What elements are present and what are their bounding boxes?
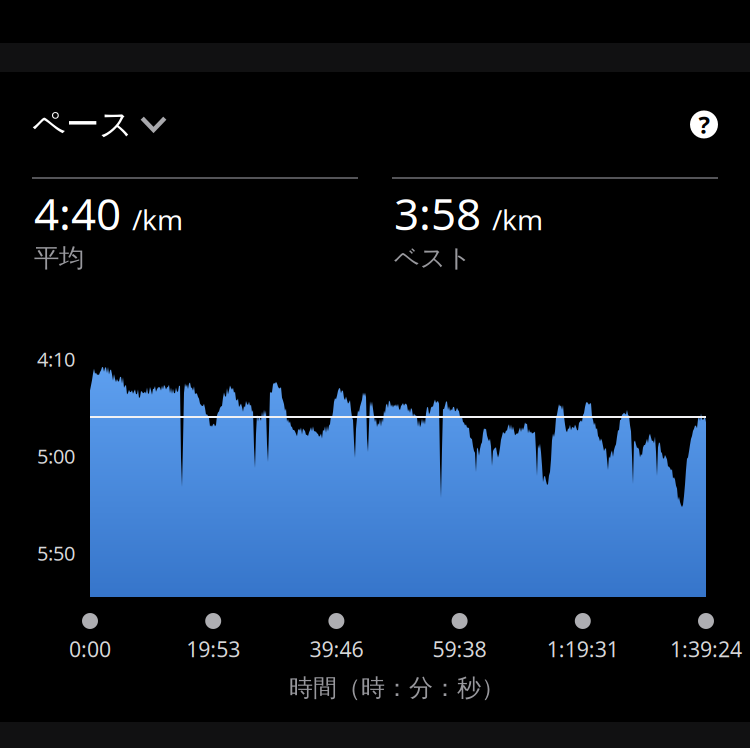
staticText: 1:39:24	[670, 635, 742, 663]
staticText: ベスト	[394, 242, 472, 273]
staticText: /km	[132, 201, 183, 238]
staticText: ?	[698, 108, 709, 140]
staticText: 59:38	[433, 635, 487, 663]
staticText: 0:00	[69, 635, 111, 663]
staticText: 5:50	[37, 540, 75, 566]
staticText: ペース	[32, 104, 133, 145]
staticText: 19:53	[186, 635, 240, 663]
button[interactable]: ペース	[32, 98, 167, 151]
staticText: 平均	[34, 242, 84, 273]
staticText: 1:19:31	[547, 635, 619, 663]
button[interactable]: ヘルプ	[690, 110, 718, 138]
staticText: 4:10	[37, 346, 75, 372]
staticText: 3:58	[394, 184, 481, 242]
staticText: 5:00	[37, 443, 75, 469]
staticText: 4:40	[34, 184, 121, 242]
staticText: /km	[492, 201, 543, 238]
staticText: 時間（時：分：秒）	[289, 673, 505, 703]
staticText: 39:46	[309, 635, 363, 663]
